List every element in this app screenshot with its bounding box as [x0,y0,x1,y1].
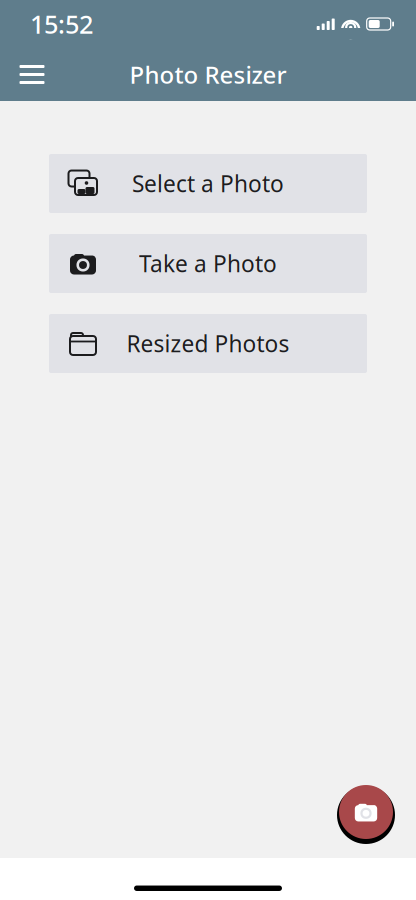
staticText: Select a Photo [132,168,284,198]
button[interactable]: Resized Photos [49,314,367,373]
staticText: Take a Photo [139,248,277,278]
button[interactable]: Take a Photo [49,234,367,293]
staticText: 15:52 [30,7,93,41]
button[interactable]: Menu [9,52,55,96]
staticText: Photo Resizer [129,59,286,90]
button[interactable]: Select a Photo [49,154,367,213]
staticText: Resized Photos [126,328,289,358]
button[interactable]: Take a Photo [334,780,398,844]
